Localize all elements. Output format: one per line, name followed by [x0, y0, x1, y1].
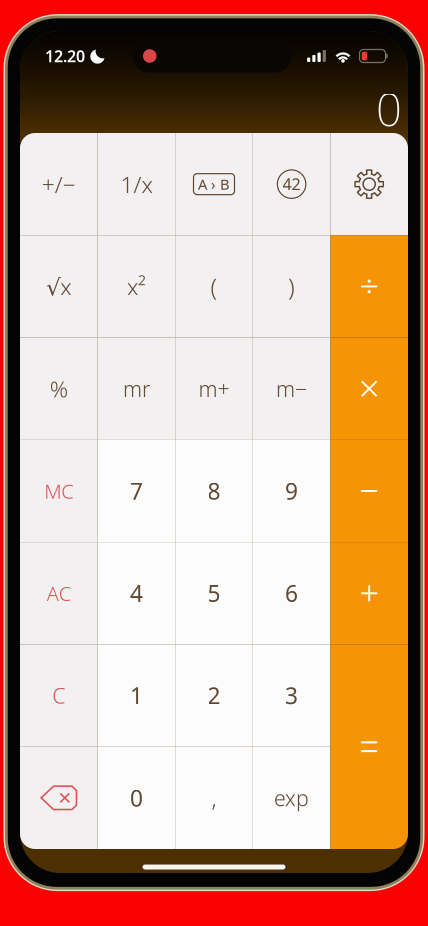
button[interactable]: AC	[20, 542, 98, 644]
staticText: 8	[207, 476, 220, 506]
staticText: 3	[285, 680, 298, 711]
button[interactable]: 0	[98, 747, 175, 849]
button[interactable]: 2	[175, 644, 253, 747]
staticText: exp	[274, 784, 309, 812]
staticText: 42	[283, 173, 301, 195]
staticText: (	[210, 270, 217, 302]
button[interactable]: 42	[253, 133, 330, 235]
button[interactable]: 8	[175, 440, 253, 542]
button[interactable]: Delete	[20, 747, 98, 849]
button[interactable]: Multiply	[330, 338, 408, 440]
staticText: 7	[130, 476, 143, 506]
button[interactable]: %	[20, 338, 98, 440]
staticText: 1/x	[120, 169, 152, 199]
staticText: ,	[211, 783, 216, 813]
button[interactable]: ,	[175, 747, 253, 849]
button[interactable]: Settings	[330, 133, 408, 235]
staticText: √x	[46, 271, 71, 301]
button[interactable]: m−	[253, 338, 330, 440]
button[interactable]: 4	[98, 542, 175, 644]
button[interactable]: √x	[20, 235, 98, 338]
staticText: +/−	[42, 169, 76, 199]
button[interactable]: C	[20, 644, 98, 747]
button[interactable]: 9	[253, 440, 330, 542]
staticText: 12.20	[45, 45, 85, 67]
staticText: MC	[44, 478, 73, 504]
button[interactable]: +/−	[20, 133, 98, 235]
button[interactable]: mr	[98, 338, 175, 440]
button[interactable]: x²	[98, 235, 175, 338]
button[interactable]: MC	[20, 440, 98, 542]
staticText: 6	[285, 578, 298, 608]
staticText: 0	[130, 783, 143, 813]
staticText: x²	[127, 271, 146, 301]
button[interactable]: 6	[253, 542, 330, 644]
button[interactable]: Equals	[330, 644, 408, 849]
staticText: A › B	[198, 174, 230, 194]
button[interactable]: 5	[175, 542, 253, 644]
button[interactable]: Minus	[330, 440, 408, 542]
button[interactable]: A to B	[175, 133, 253, 235]
staticText: 1	[130, 680, 143, 711]
staticText: 5	[207, 578, 220, 608]
staticText: 9	[285, 476, 298, 506]
button[interactable]: m+	[175, 338, 253, 440]
staticText: 2	[207, 680, 220, 711]
button[interactable]: exp	[253, 747, 330, 849]
button[interactable]: )	[253, 235, 330, 338]
button[interactable]: (	[175, 235, 253, 338]
staticText: )	[288, 270, 295, 302]
button[interactable]: 3	[253, 644, 330, 747]
button[interactable]: 1	[98, 644, 175, 747]
staticText: C	[52, 681, 65, 710]
staticText: AC	[47, 580, 71, 607]
button[interactable]: Plus	[330, 542, 408, 644]
button[interactable]: 7	[98, 440, 175, 542]
staticText: %	[50, 374, 68, 404]
button[interactable]: 1/x	[98, 133, 175, 235]
staticText: 0	[376, 79, 402, 139]
staticText: m−	[276, 374, 307, 403]
staticText: mr	[123, 374, 150, 403]
staticText: m+	[198, 374, 229, 403]
button[interactable]: Divide	[330, 235, 408, 338]
staticText: 4	[130, 578, 143, 608]
